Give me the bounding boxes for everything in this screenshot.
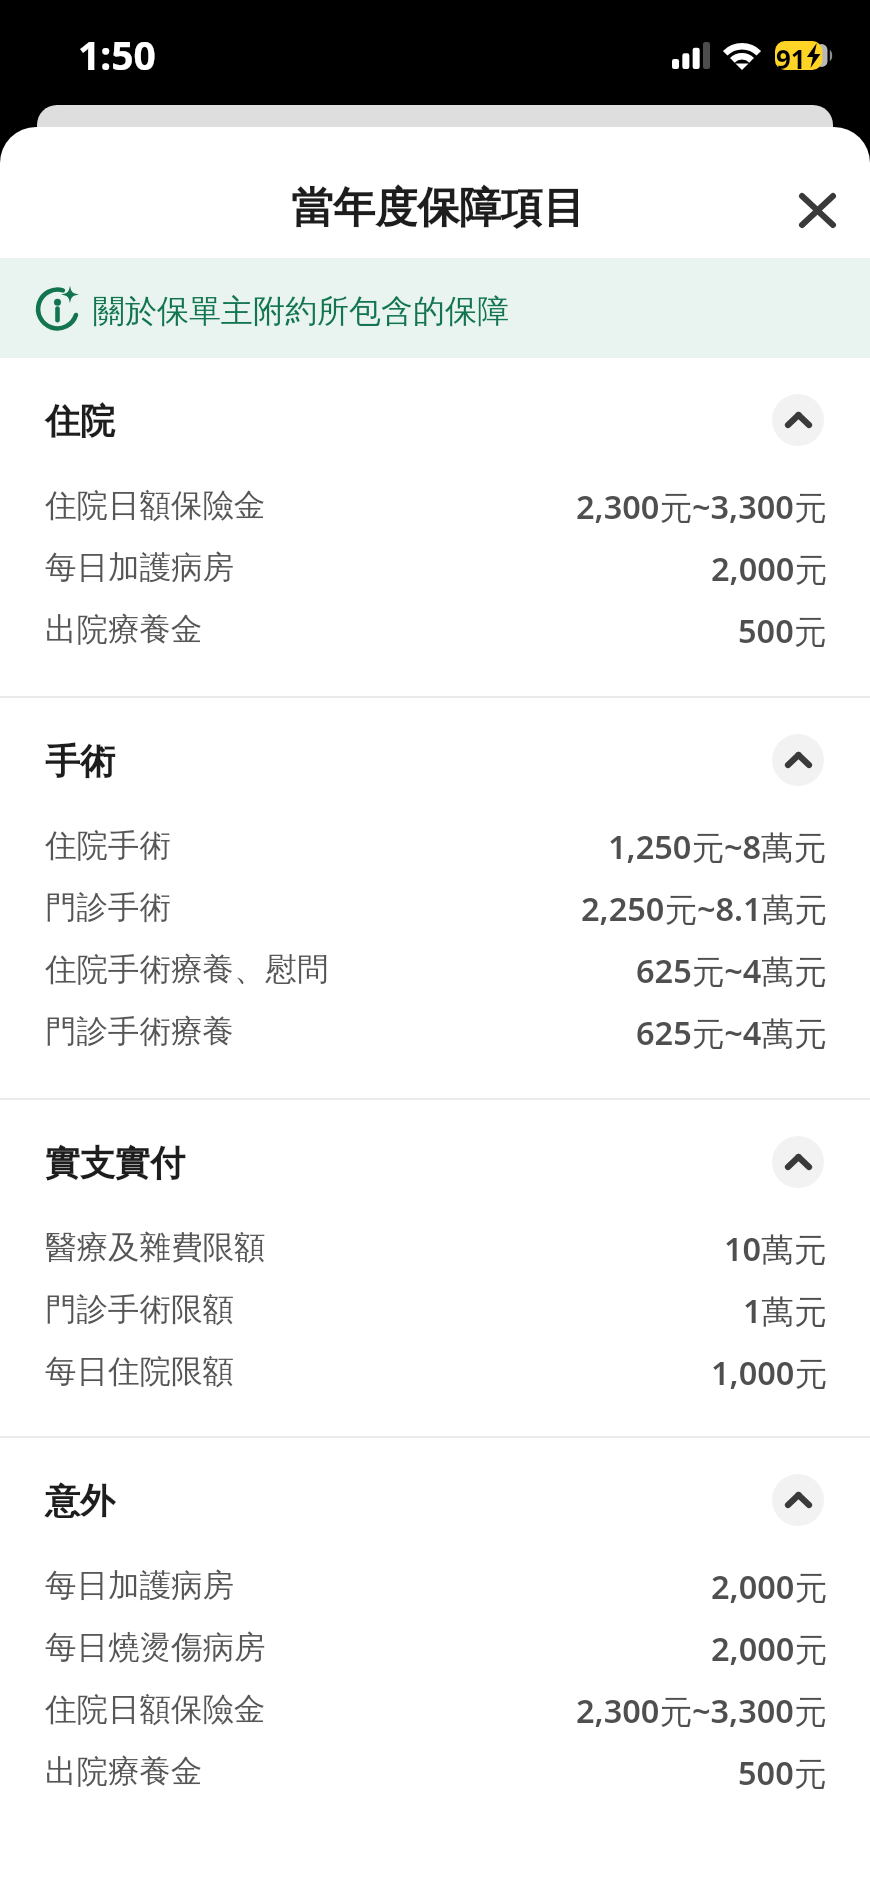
staticText: 實支實付 bbox=[45, 1141, 185, 1185]
button[interactable]: 實支實付 bbox=[0, 1100, 870, 1217]
staticText: 2,000元 bbox=[711, 546, 827, 590]
staticText: 住院日額保險金 bbox=[45, 486, 266, 526]
button[interactable]: 意外 bbox=[0, 1438, 870, 1555]
staticText: 門診手術療養 bbox=[45, 1012, 234, 1052]
staticText: 每日加護病房 bbox=[45, 1566, 234, 1606]
staticText: 出院療養金 bbox=[45, 1752, 203, 1792]
staticText: 當年度保障項目 bbox=[291, 182, 585, 235]
staticText: 10萬元 bbox=[724, 1226, 827, 1270]
other: Collapse bbox=[772, 394, 824, 446]
other: Collapse bbox=[772, 1474, 824, 1526]
staticText: 手術 bbox=[45, 739, 115, 783]
button[interactable]: 手術 bbox=[0, 698, 870, 815]
staticText: 意外 bbox=[45, 1479, 115, 1523]
staticText: 門診手術限額 bbox=[45, 1290, 234, 1330]
button[interactable]: 住院 bbox=[0, 358, 870, 475]
staticText: 1:50 bbox=[78, 28, 156, 81]
staticText: 門診手術 bbox=[45, 888, 171, 928]
staticText: 每日加護病房 bbox=[45, 548, 234, 588]
staticText: 每日燒燙傷病房 bbox=[45, 1628, 266, 1668]
staticText: 每日住院限額 bbox=[45, 1352, 234, 1392]
other: Collapse bbox=[772, 734, 824, 786]
staticText: 住院 bbox=[45, 399, 115, 443]
staticText: 1,000元 bbox=[711, 1350, 827, 1394]
staticText: 住院手術 bbox=[45, 826, 171, 866]
staticText: 625元~4萬元 bbox=[636, 948, 827, 992]
staticText: 2,300元~3,300元 bbox=[576, 1688, 827, 1732]
staticText: 91 bbox=[776, 41, 806, 70]
staticText: 500元 bbox=[738, 1750, 827, 1794]
staticText: 500元 bbox=[738, 608, 827, 652]
staticText: 關於保單主附約所包含的保障 bbox=[93, 291, 509, 331]
staticText: 1,250元~8萬元 bbox=[608, 824, 827, 868]
other: Collapse bbox=[772, 1136, 824, 1188]
button[interactable]: 關於保單主附約所包含的保障 bbox=[0, 258, 870, 358]
staticText: 出院療養金 bbox=[45, 610, 203, 650]
staticText: 2,250元~8.1萬元 bbox=[581, 886, 827, 930]
staticText: 住院日額保險金 bbox=[45, 1690, 266, 1730]
button[interactable]: Close bbox=[786, 179, 848, 241]
staticText: 2,300元~3,300元 bbox=[576, 484, 827, 528]
staticText: 625元~4萬元 bbox=[636, 1010, 827, 1054]
staticText: 住院手術療養、慰問 bbox=[45, 950, 329, 990]
staticText: 1萬元 bbox=[743, 1288, 827, 1332]
staticText: 2,000元 bbox=[711, 1626, 827, 1670]
staticText: 2,000元 bbox=[711, 1564, 827, 1608]
staticText: 醫療及雜費限額 bbox=[45, 1228, 266, 1268]
